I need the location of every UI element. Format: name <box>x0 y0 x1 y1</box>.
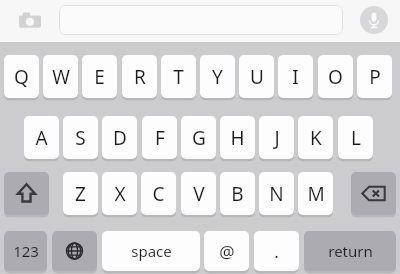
button[interactable]: M <box>298 172 333 215</box>
button[interactable]: H <box>220 116 255 159</box>
staticText: H <box>230 125 245 151</box>
staticText: A <box>35 125 48 151</box>
staticText: C <box>152 181 165 207</box>
staticText: X <box>114 181 126 207</box>
staticText: 123 <box>13 241 39 261</box>
button[interactable]: Z <box>63 172 98 215</box>
button[interactable] <box>59 5 343 35</box>
staticText: I <box>292 64 299 90</box>
staticText: T <box>173 64 184 90</box>
staticText: S <box>75 125 86 151</box>
staticText: M <box>307 181 325 207</box>
button[interactable]: @ <box>204 231 249 271</box>
staticText: E <box>94 64 105 90</box>
button[interactable]: F <box>142 116 177 159</box>
button[interactable]: return <box>304 231 396 271</box>
staticText: . <box>274 240 279 263</box>
staticText: Q <box>14 64 29 90</box>
button[interactable]: S <box>63 116 98 159</box>
button[interactable]: B <box>220 172 255 215</box>
button[interactable]: P <box>357 55 392 98</box>
staticText: J <box>274 125 280 151</box>
button[interactable]: J <box>259 116 294 159</box>
button[interactable]: Y <box>200 55 235 98</box>
button[interactable]: Backspace <box>351 172 396 215</box>
staticText: P <box>369 64 381 90</box>
staticText: L <box>351 125 361 151</box>
staticText: K <box>310 125 322 151</box>
staticText: O <box>328 64 343 90</box>
staticText: D <box>113 125 127 151</box>
staticText: Y <box>212 64 223 90</box>
button[interactable]: L <box>338 116 373 159</box>
button[interactable]: I <box>278 55 313 98</box>
button[interactable]: . <box>254 231 299 271</box>
button[interactable]: K <box>298 116 333 159</box>
button[interactable]: T <box>161 55 196 98</box>
button[interactable]: W <box>43 55 78 98</box>
staticText: W <box>52 64 70 90</box>
button[interactable]: O <box>318 55 353 98</box>
button[interactable]: D <box>102 116 137 159</box>
staticText: U <box>250 64 264 90</box>
button[interactable]: E <box>82 55 117 98</box>
staticText: Z <box>75 181 86 207</box>
button[interactable]: V <box>181 172 216 215</box>
staticText: return <box>328 241 373 261</box>
staticText: @ <box>219 240 235 263</box>
staticText: N <box>269 181 284 207</box>
staticText: space <box>131 241 172 261</box>
button[interactable]: 123 <box>4 231 47 271</box>
button[interactable]: Camera <box>18 11 42 31</box>
staticText: V <box>193 181 205 207</box>
button[interactable]: C <box>141 172 176 215</box>
button[interactable]: G <box>181 116 216 159</box>
button[interactable]: X <box>102 172 137 215</box>
staticText: F <box>155 125 165 151</box>
button[interactable]: Switch keyboard <box>52 231 97 271</box>
button[interactable]: Shift <box>4 172 49 215</box>
staticText: B <box>231 181 244 207</box>
button[interactable]: space <box>102 231 200 271</box>
button[interactable]: N <box>259 172 294 215</box>
button[interactable]: U <box>239 55 274 98</box>
staticText: R <box>134 64 146 90</box>
button[interactable]: Q <box>4 55 39 98</box>
staticText: G <box>192 125 206 151</box>
button[interactable]: A <box>24 116 59 159</box>
button[interactable]: Voice input <box>360 6 388 34</box>
button[interactable]: R <box>122 55 157 98</box>
